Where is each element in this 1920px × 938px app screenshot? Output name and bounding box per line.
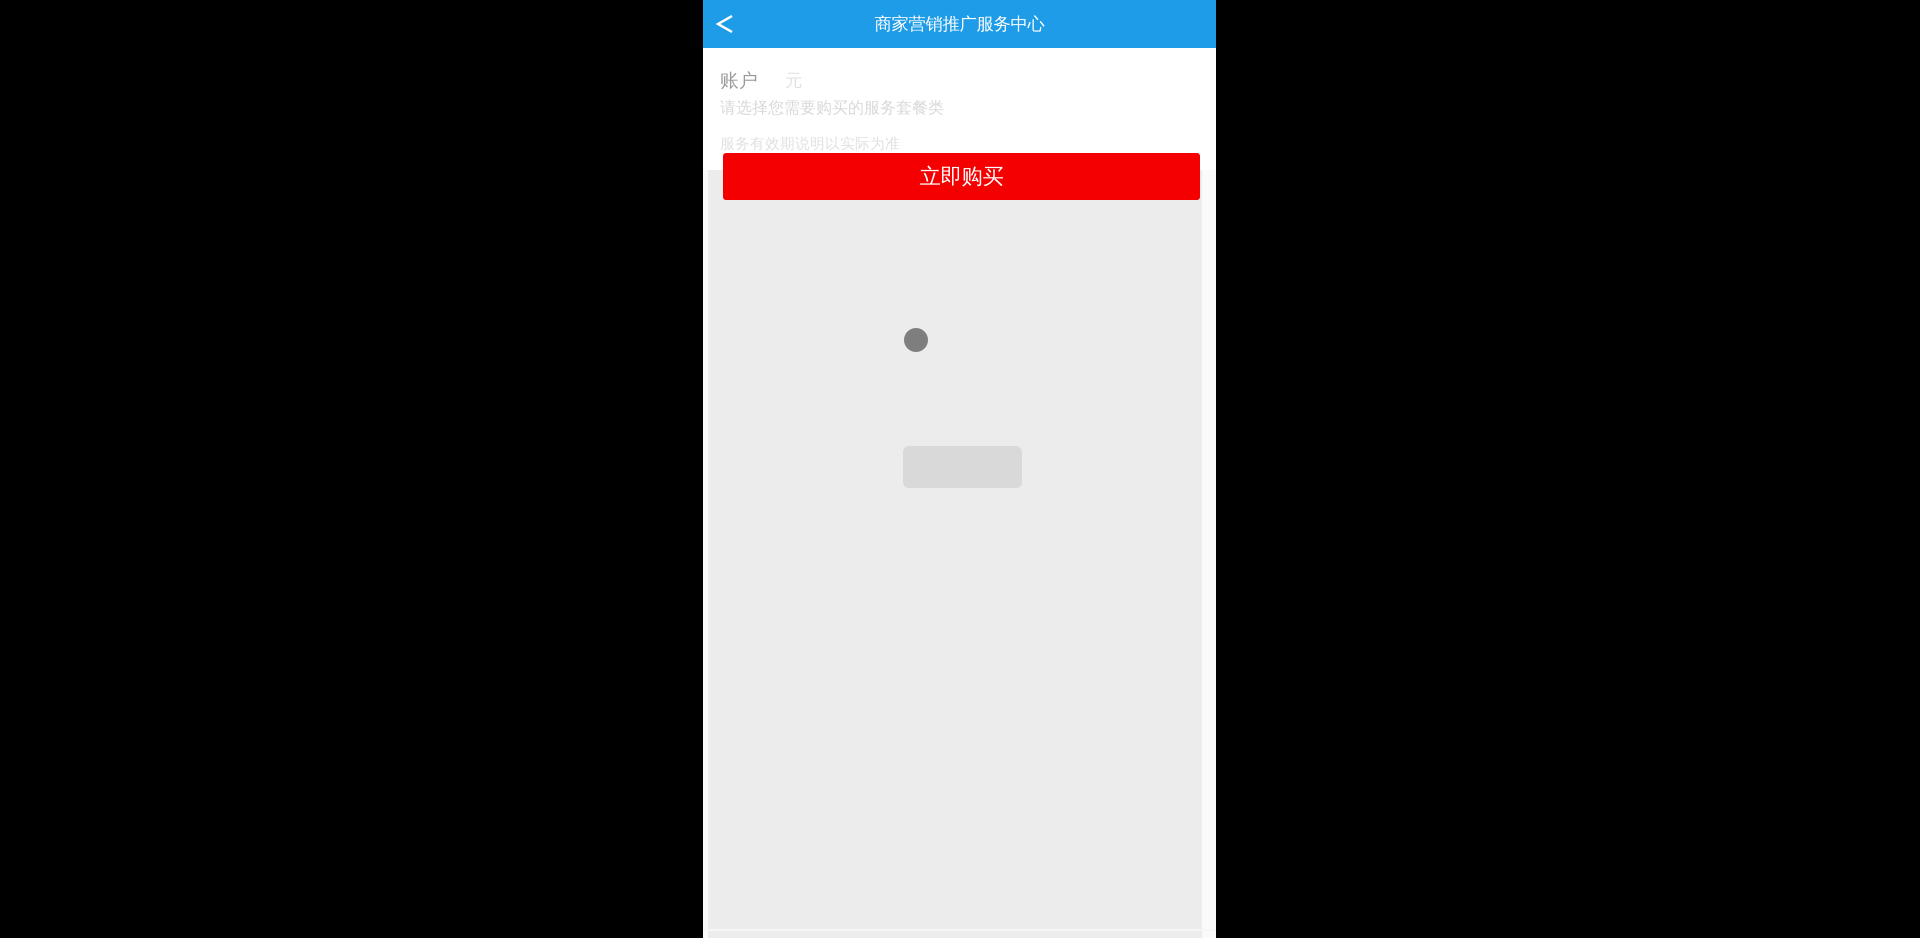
staticText: 立即购买 <box>919 163 1003 190</box>
staticText: 商家营销推广服务中心 <box>874 13 1044 35</box>
button[interactable]: Back <box>703 0 747 48</box>
staticText: 账户 <box>720 69 758 92</box>
staticText: 元 <box>785 70 802 91</box>
staticText: 请选择您需要购买的服务套餐类 <box>720 98 944 118</box>
button[interactable]: 立即购买 <box>723 153 1200 200</box>
staticText: 服务有效期说明以实际为准 <box>720 135 900 153</box>
